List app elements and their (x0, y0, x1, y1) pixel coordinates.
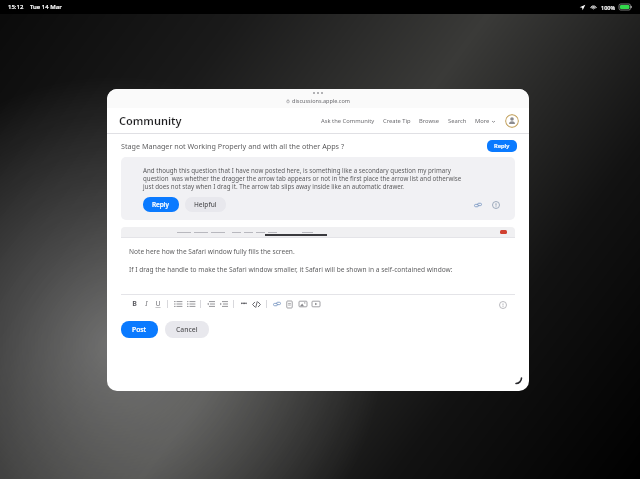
staticText: If I drag the handle to make the Safari … (129, 265, 453, 274)
staticText: Community (119, 113, 182, 128)
staticText: B (132, 299, 137, 309)
staticText: question was whether the dragger the arr… (143, 174, 462, 182)
button[interactable]: Decrease indent (204, 297, 217, 311)
button[interactable]: Account (505, 114, 519, 128)
staticText: Stage Manager not Working Properly and w… (121, 141, 345, 151)
staticText: 15:12 (8, 3, 24, 11)
button[interactable]: Report (490, 199, 501, 210)
staticText: just does not stay when I drag it. The a… (143, 182, 404, 190)
staticText: discussions.apple.com (292, 97, 350, 104)
button[interactable]: U (152, 297, 164, 311)
staticText: Helpful (194, 200, 217, 209)
button[interactable]: Ask the Community (317, 114, 379, 128)
staticText: Search (448, 117, 467, 125)
button[interactable]: Block quote (237, 297, 250, 311)
staticText: Tue 14 Mar (30, 3, 62, 11)
button[interactable]: Copy link (472, 199, 483, 210)
staticText: Reply (494, 142, 510, 150)
button[interactable]: Attach document (283, 297, 296, 311)
button[interactable]: More (471, 114, 499, 128)
button[interactable]: Create Tip (379, 114, 415, 128)
staticText: Note here how the Safari window fully fi… (129, 247, 295, 256)
staticText: Cancel (176, 325, 198, 334)
staticText: U (155, 299, 161, 309)
button[interactable]: Insert link (270, 297, 283, 311)
button[interactable]: Cancel (165, 321, 209, 338)
button[interactable]: Search (444, 114, 471, 128)
staticText: Ask the Community (321, 117, 375, 125)
button[interactable]: Code block (250, 297, 263, 311)
button[interactable]: Increase indent (217, 297, 230, 311)
button[interactable]: Reply (487, 140, 517, 152)
staticText: I (145, 299, 148, 309)
button[interactable]: Insert video (309, 297, 322, 311)
staticText: Create Tip (383, 117, 411, 125)
button[interactable]: Helpful (185, 197, 226, 212)
button[interactable]: Post (121, 321, 158, 338)
button[interactable]: I (140, 297, 152, 311)
staticText: Reply (152, 200, 170, 209)
staticText: 100% (601, 4, 616, 11)
staticText: Post (132, 325, 147, 334)
staticText: And though this question that I have now… (143, 166, 451, 174)
button[interactable]: Help (497, 299, 508, 310)
button[interactable]: Resize window (513, 375, 529, 391)
staticText: More (475, 117, 490, 125)
button[interactable]: Browse (415, 114, 444, 128)
button[interactable]: Insert image (296, 297, 309, 311)
staticText: Browse (419, 117, 440, 125)
button[interactable]: Reply (143, 197, 179, 212)
button[interactable]: Numbered list (171, 297, 184, 311)
button[interactable]: Bulleted list (184, 297, 197, 311)
button[interactable]: B (128, 297, 140, 311)
